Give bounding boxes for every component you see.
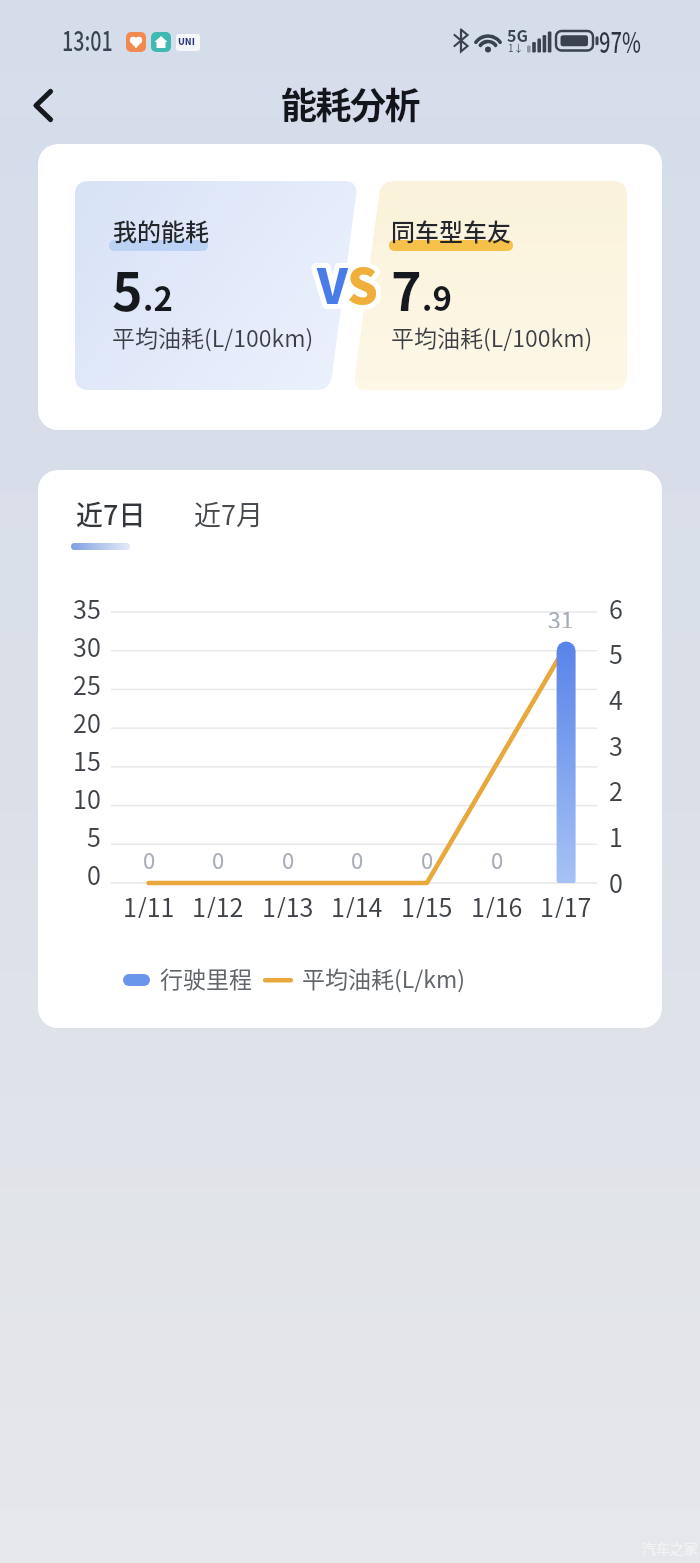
staticText: 能耗分析 xyxy=(0,77,700,129)
staticText: 0 xyxy=(212,843,225,869)
staticText: 我的能耗 xyxy=(113,213,209,248)
staticText: 平均油耗(L/100km) xyxy=(391,320,593,353)
staticText: 平均油耗(L/100km) xyxy=(112,320,314,353)
staticText: 1 xyxy=(609,818,623,850)
staticText: UNI xyxy=(178,35,195,48)
staticText: 97% xyxy=(599,21,641,62)
staticText: 1↓ xyxy=(508,40,524,54)
staticText: 0 xyxy=(87,856,101,888)
staticText: 13:01 xyxy=(62,20,113,59)
staticText: 5 xyxy=(87,818,101,850)
staticText: 35 xyxy=(73,590,101,622)
staticText: 0 xyxy=(351,843,364,869)
staticText: 1/14 xyxy=(331,888,383,918)
staticText: 1/12 xyxy=(192,888,244,918)
staticText: 6 xyxy=(609,590,623,622)
staticText: 0 xyxy=(143,843,156,869)
staticText: 行驶里程 xyxy=(160,961,252,994)
button[interactable] xyxy=(18,86,66,130)
staticText: 5 xyxy=(609,635,623,667)
staticText: 1/17 xyxy=(540,888,592,918)
staticText: 近7月 xyxy=(194,494,263,533)
staticText: 1/16 xyxy=(471,888,523,918)
staticText: 汽车之家 xyxy=(642,1538,698,1558)
staticText: 30 xyxy=(73,628,101,660)
button[interactable]: 近7日 xyxy=(68,490,178,556)
staticText: 1/11 xyxy=(123,888,175,918)
staticText: 近7日 xyxy=(76,494,146,533)
staticText: 4 xyxy=(609,681,623,713)
staticText: 5.2 xyxy=(112,251,173,326)
staticText: 0 xyxy=(421,843,434,869)
staticText: 2 xyxy=(609,772,623,804)
button[interactable]: 近7月 xyxy=(184,490,284,556)
staticText: VS xyxy=(317,248,378,318)
staticText: 20 xyxy=(73,704,101,736)
staticText: 5G xyxy=(507,23,528,46)
staticText: 31 xyxy=(548,602,574,628)
staticText: 7.9 xyxy=(391,251,452,326)
staticText: 10 xyxy=(73,780,101,812)
staticText: 0 xyxy=(282,843,295,869)
staticText: 平均油耗(L/km) xyxy=(302,961,466,994)
staticText: 1/15 xyxy=(401,888,453,918)
staticText: 同车型车友 xyxy=(391,213,511,248)
staticText: 25 xyxy=(73,666,101,698)
staticText: 3 xyxy=(609,727,623,759)
staticText: VS xyxy=(317,248,378,318)
staticText: 1/13 xyxy=(262,888,314,918)
staticText: 0 xyxy=(609,864,623,896)
staticText: 0 xyxy=(491,843,504,869)
staticText: 15 xyxy=(73,742,101,774)
